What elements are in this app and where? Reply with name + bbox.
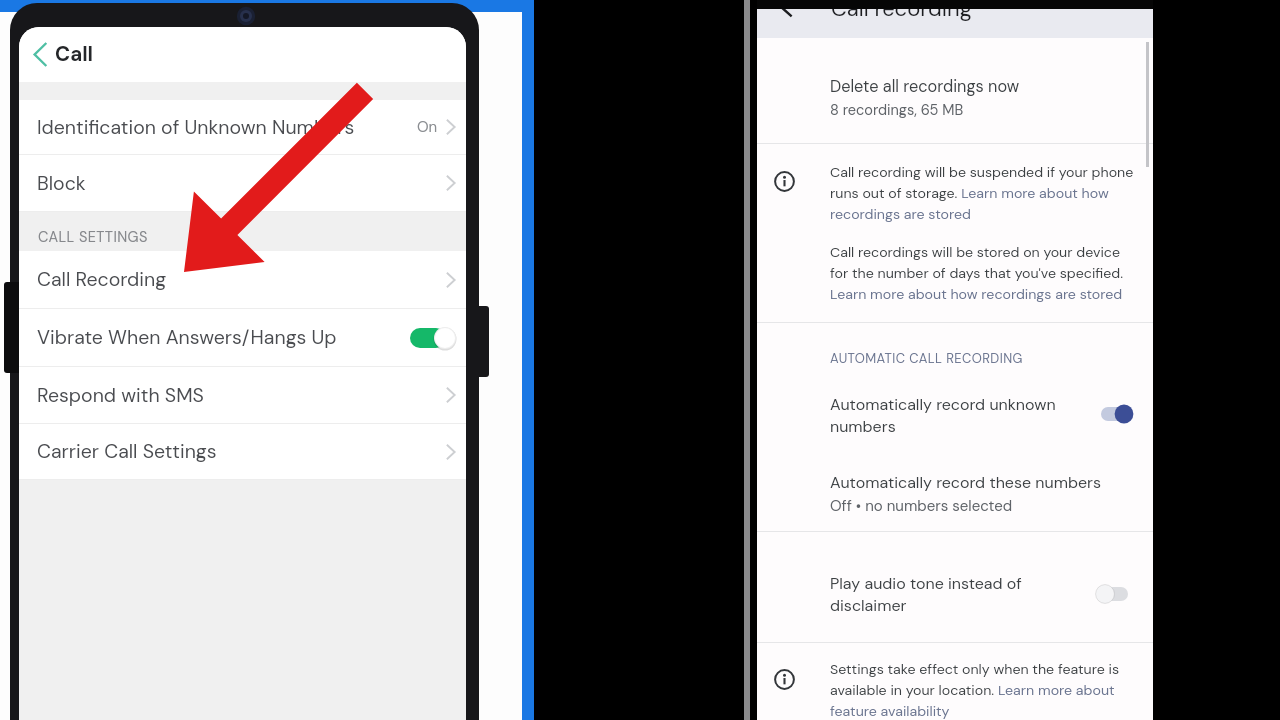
button[interactable] (757, 381, 1153, 443)
button[interactable] (757, 560, 1153, 622)
staticText: Call recording (831, 0, 972, 23)
staticText: Call recording will be suspended if your… (830, 163, 1134, 223)
staticText: Settings take effect only when the featu… (830, 660, 1120, 720)
button[interactable]: Respond with SMS (19, 367, 466, 424)
staticText: Call recordings will be stored on your d… (830, 243, 1124, 303)
staticText: Carrier Call Settings (37, 439, 444, 464)
staticText: Delete all recordings now (830, 76, 1020, 97)
button[interactable]: Vibrate When Answers/Hangs Up (19, 309, 466, 367)
button[interactable]: Call Recording (19, 251, 466, 309)
button[interactable]: Call (19, 27, 466, 82)
staticText: Automatically record these numbers (830, 472, 1101, 493)
staticText: Call (55, 41, 94, 68)
staticText: Identification of Unknown Numbers (37, 115, 417, 140)
staticText: Respond with SMS (37, 383, 444, 408)
staticText: Play audio tone instead of disclaimer (830, 573, 1022, 616)
button[interactable]: Block (19, 155, 466, 212)
staticText: 8 recordings, 65 MB (830, 101, 964, 120)
staticText: AUTOMATIC CALL RECORDING (830, 350, 1023, 367)
button[interactable]: Back (775, 0, 801, 22)
staticText: Automatically record unknown numbers (830, 394, 1056, 437)
staticText: Block (37, 171, 444, 196)
staticText: CALL SETTINGS (38, 228, 148, 247)
staticText: Call Recording (37, 267, 444, 292)
staticText: On (417, 117, 438, 137)
staticText: Off • no numbers selected (830, 496, 1013, 516)
button[interactable] (757, 463, 1153, 521)
button[interactable] (757, 38, 1153, 143)
button[interactable]: Carrier Call Settings (19, 424, 466, 480)
staticText: Vibrate When Answers/Hangs Up (37, 325, 410, 350)
button[interactable]: Identification of Unknown Numbers (19, 100, 466, 155)
